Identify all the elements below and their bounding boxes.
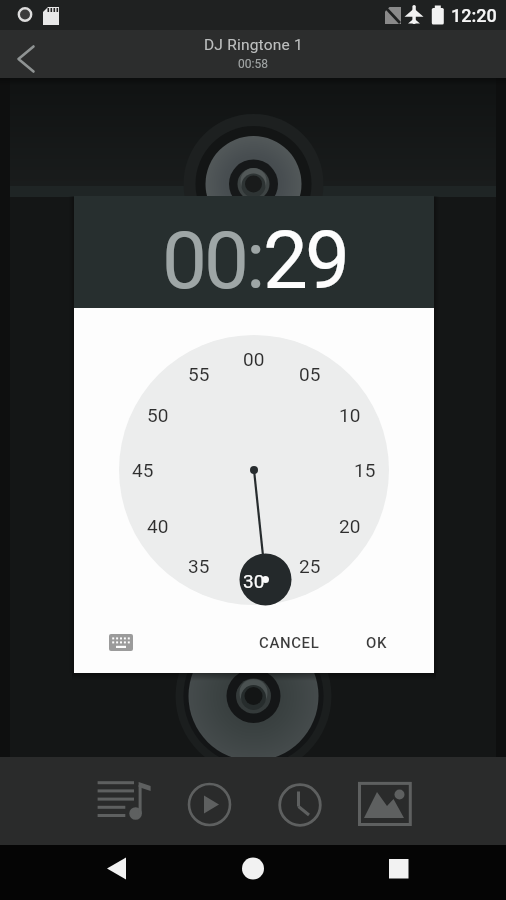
button[interactable] bbox=[92, 849, 142, 895]
staticText: OK bbox=[366, 634, 388, 652]
staticText: 10 bbox=[339, 404, 361, 426]
button[interactable] bbox=[371, 849, 421, 895]
staticText: 00: bbox=[162, 214, 263, 308]
staticText: 00:58 bbox=[238, 57, 268, 71]
staticText: 15 bbox=[354, 459, 376, 481]
button[interactable] bbox=[99, 624, 143, 660]
staticText: 45 bbox=[132, 459, 154, 481]
staticText: 00 bbox=[243, 348, 265, 370]
staticText: 30 bbox=[243, 570, 265, 592]
staticText: 29 bbox=[263, 214, 347, 308]
staticText: 35 bbox=[188, 555, 210, 577]
button[interactable] bbox=[356, 780, 414, 828]
button[interactable] bbox=[228, 849, 278, 895]
staticText: DJ Ringtone 1 bbox=[204, 36, 303, 54]
staticText: 05 bbox=[299, 363, 321, 385]
button[interactable] bbox=[90, 774, 156, 826]
staticText: 20 bbox=[339, 515, 361, 537]
button[interactable]: OK bbox=[352, 629, 402, 657]
staticText: 12:20 bbox=[451, 5, 497, 26]
button[interactable] bbox=[187, 782, 232, 827]
staticText: 50 bbox=[147, 404, 169, 426]
staticText: CANCEL bbox=[259, 634, 320, 652]
staticText: 40 bbox=[147, 515, 169, 537]
button[interactable]: CANCEL bbox=[245, 629, 333, 657]
button[interactable] bbox=[278, 783, 322, 827]
staticText: 55 bbox=[188, 363, 210, 385]
button[interactable] bbox=[8, 41, 46, 77]
staticText: 25 bbox=[299, 555, 321, 577]
